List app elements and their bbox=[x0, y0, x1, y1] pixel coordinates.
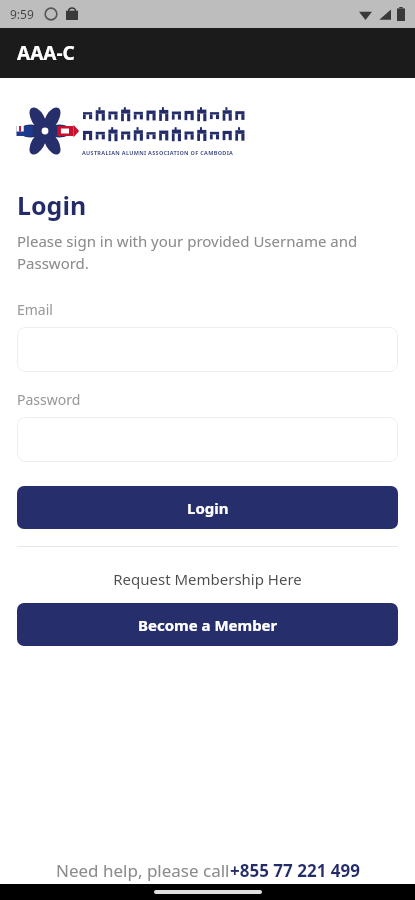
staticText: Need help, please call bbox=[56, 859, 230, 882]
staticText: Please sign in with your provided Userna… bbox=[17, 231, 398, 274]
button[interactable] bbox=[17, 417, 398, 462]
staticText: Become a Member bbox=[138, 615, 278, 635]
button[interactable]: +855 77 221 499 bbox=[230, 859, 360, 882]
staticText: Email bbox=[17, 300, 53, 319]
staticText: Login bbox=[17, 188, 87, 222]
staticText: AAA-C bbox=[17, 40, 75, 66]
staticText: Password bbox=[17, 390, 81, 409]
button[interactable]: Become a Member bbox=[17, 603, 398, 646]
button[interactable] bbox=[17, 327, 398, 372]
staticText: AUSTRALIAN ALUMNI ASSOCIATION OF CAMBODI… bbox=[82, 149, 234, 156]
button[interactable]: Login bbox=[17, 486, 398, 529]
staticText: Request Membership Here bbox=[17, 569, 398, 589]
staticText: Login bbox=[187, 498, 229, 518]
staticText: 9:59 bbox=[10, 6, 34, 22]
